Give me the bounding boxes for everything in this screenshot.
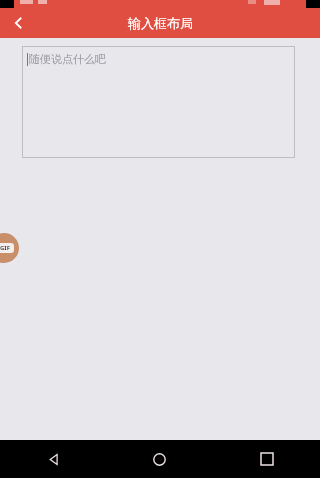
staticText: GIF [0,244,10,252]
button[interactable]: Recent apps [213,440,320,478]
staticText: 输入框布局 [128,15,193,31]
staticText: 随便说点什么吧 [29,52,106,66]
button[interactable]: Back [0,8,38,38]
button[interactable]: Home [106,440,213,478]
button[interactable]: 随便说点什么吧 [22,46,295,158]
button[interactable]: Back [0,440,106,478]
button[interactable]: Emoji [0,233,19,263]
